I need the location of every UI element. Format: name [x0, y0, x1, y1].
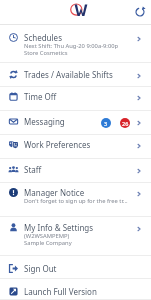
- staticText: Work Preferences: [24, 141, 91, 150]
- staticText: (W2WSAMPEMP): [24, 233, 70, 240]
- button[interactable]: Refresh: [133, 5, 147, 19]
- staticText: Trades / Available Shifts: [24, 71, 113, 80]
- staticText: Staff: [24, 166, 42, 175]
- staticText: Schedules: [24, 34, 62, 43]
- staticText: Store Cosmetics: [24, 50, 68, 57]
- button[interactable]: Trades / Available Shifts: [0, 63, 151, 87]
- button[interactable]: Staff: [0, 159, 151, 183]
- staticText: Don't forget to sign up for the free tr.…: [24, 198, 128, 205]
- staticText: Next Shift: Thu Aug-20 9:00a-9:00p: [24, 43, 119, 50]
- staticText: 26: [122, 120, 129, 127]
- staticText: Messaging: [24, 118, 65, 127]
- staticText: 3: [104, 120, 108, 127]
- button[interactable]: Time Off: [0, 87, 151, 111]
- button[interactable]: My Info & Settings: [0, 217, 151, 256]
- staticText: Sample Company: [24, 240, 72, 247]
- staticText: My Info & Settings: [24, 224, 94, 233]
- button[interactable]: Schedules: [0, 25, 151, 63]
- staticText: Launch Full Version: [24, 288, 97, 297]
- button[interactable]: Work Preferences: [0, 135, 151, 159]
- button[interactable]: Sign Out: [0, 256, 151, 279]
- button[interactable]: Manager Notice: [0, 183, 151, 217]
- button[interactable]: Launch Full Version: [0, 279, 151, 300]
- staticText: Time Off: [24, 93, 57, 102]
- staticText: Manager Notice: [24, 189, 85, 198]
- button[interactable]: Messaging: [0, 111, 151, 135]
- staticText: Sign Out: [24, 265, 57, 274]
